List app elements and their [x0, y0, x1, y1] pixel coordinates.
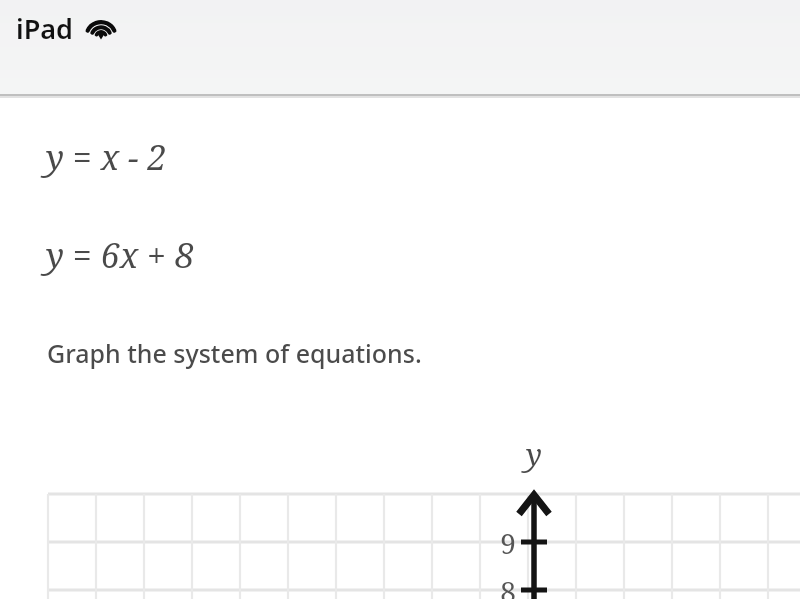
staticText: y = x − 2	[46, 134, 167, 180]
staticText: iPad	[16, 10, 73, 47]
button[interactable]: Graph the system of equations.	[47, 336, 422, 370]
staticText: 9	[486, 524, 516, 562]
staticText: y	[516, 434, 552, 475]
staticText: y = 6x + 8	[46, 232, 194, 278]
other: Wi-Fi signal	[85, 16, 117, 42]
staticText: 8	[486, 572, 516, 599]
